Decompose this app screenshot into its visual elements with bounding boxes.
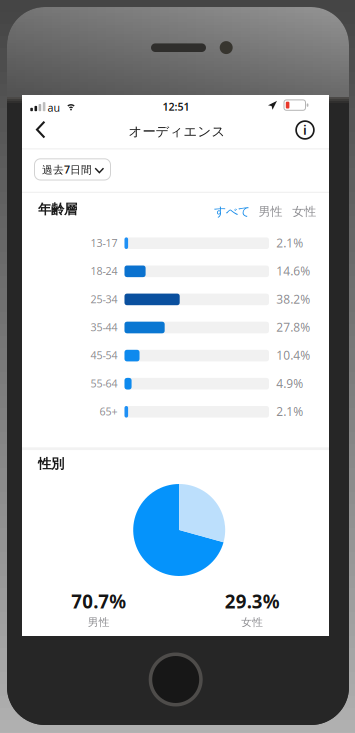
- staticText: 男性: [258, 204, 282, 219]
- button[interactable]: 過去7日間: [34, 159, 110, 180]
- staticText: 12:51: [162, 100, 189, 114]
- staticText: 過去7日間: [42, 162, 92, 176]
- staticText: 29.3%: [225, 589, 280, 614]
- staticText: 年齢層: [38, 201, 77, 217]
- staticText: 14.6%: [276, 263, 310, 279]
- button[interactable]: Information: [284, 112, 326, 147]
- staticText: 2.1%: [276, 235, 303, 251]
- staticText: au: [47, 101, 60, 115]
- button[interactable]: Back: [22, 112, 66, 147]
- button[interactable]: 男性: [258, 204, 282, 219]
- staticText: 45-54: [90, 348, 117, 362]
- staticText: 2.1%: [276, 403, 303, 419]
- staticText: すべて: [214, 204, 250, 219]
- staticText: 55-64: [90, 376, 117, 390]
- staticText: 性別: [38, 456, 64, 472]
- staticText: 38.2%: [276, 291, 310, 307]
- staticText: 18-24: [90, 264, 117, 278]
- button[interactable]: 女性: [292, 204, 316, 219]
- staticText: 男性: [88, 616, 110, 629]
- button[interactable]: すべて: [214, 204, 250, 219]
- staticText: 女性: [241, 616, 263, 629]
- staticText: オーディエンス: [129, 123, 226, 140]
- staticText: 35-44: [90, 320, 117, 334]
- staticText: 65+: [99, 404, 117, 418]
- staticText: 70.7%: [71, 589, 126, 614]
- staticText: 13-17: [90, 236, 117, 250]
- staticText: 10.4%: [276, 347, 310, 363]
- staticText: i: [303, 121, 307, 138]
- staticText: 4.9%: [276, 375, 303, 391]
- staticText: 27.8%: [276, 319, 310, 335]
- staticText: 25-34: [90, 292, 117, 306]
- staticText: 女性: [292, 204, 316, 219]
